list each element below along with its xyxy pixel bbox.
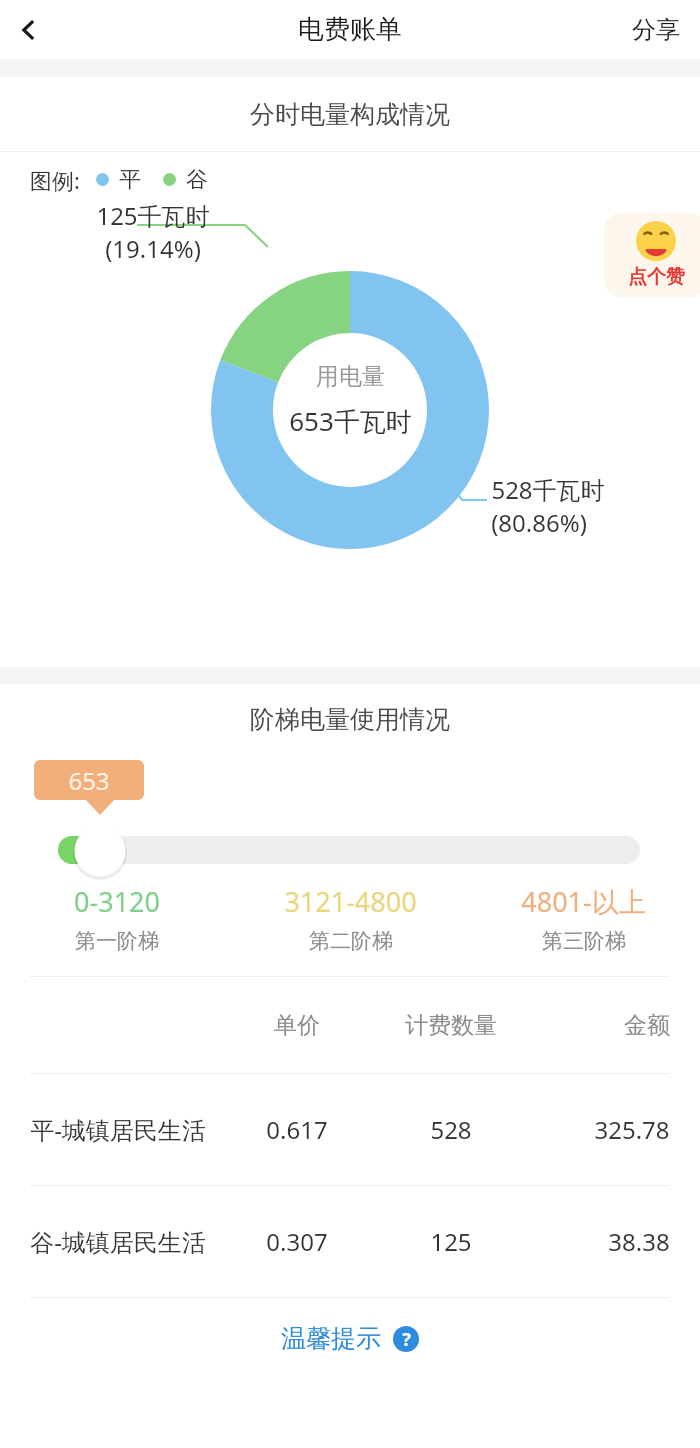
staticText: 金额	[624, 1011, 670, 1040]
staticText: 125千瓦时	[96, 199, 210, 232]
staticText: 用电量	[316, 362, 385, 391]
staticText: 125	[430, 1225, 472, 1258]
staticText: 图例:	[30, 165, 80, 195]
staticText: 0.307	[266, 1225, 328, 1258]
staticText: 阶梯电量使用情况	[250, 704, 450, 735]
button[interactable]: 0-3120	[0, 879, 234, 958]
button[interactable]: 平-城镇居民生活	[30, 1074, 670, 1185]
button[interactable]: 分享	[612, 0, 700, 59]
staticText: 电费账单	[298, 13, 402, 46]
staticText: (80.86%)	[491, 506, 587, 539]
staticText: 计费数量	[405, 1011, 497, 1040]
staticText: 0-3120	[74, 883, 160, 920]
button[interactable]: 谷-城镇居民生活	[30, 1186, 670, 1297]
staticText: 分享	[632, 15, 680, 45]
staticText: 4801-以上	[521, 883, 646, 920]
staticText: 38.38	[608, 1225, 670, 1258]
staticText: 528千瓦时	[491, 473, 605, 506]
staticText: ?	[402, 1327, 411, 1352]
staticText: 528	[430, 1113, 472, 1146]
button[interactable]: 温馨提示	[267, 1315, 433, 1362]
staticText: 第一阶梯	[75, 928, 159, 954]
button[interactable]: 单价	[30, 977, 670, 1073]
staticText: 点个赞	[628, 265, 685, 289]
staticText: 温馨提示	[281, 1323, 381, 1354]
staticText: 0.617	[266, 1113, 328, 1146]
button[interactable]: 点个赞	[604, 213, 700, 297]
staticText: 3121-4800	[284, 883, 417, 920]
staticText: 第三阶梯	[542, 928, 626, 954]
button[interactable]: 用电量阶梯	[58, 836, 640, 864]
button[interactable]: Back	[0, 0, 58, 59]
staticText: 平	[119, 166, 141, 194]
button[interactable]: 4801-以上	[467, 879, 700, 958]
staticText: 653	[68, 764, 110, 797]
staticText: 谷-城镇居民生活	[30, 1225, 206, 1258]
staticText: 谷	[186, 166, 208, 194]
staticText: 325.78	[594, 1113, 670, 1146]
staticText: 653千瓦时	[289, 403, 412, 439]
staticText: 单价	[274, 1011, 320, 1040]
button[interactable]: 3121-4800	[234, 879, 467, 958]
staticText: (19.14%)	[105, 232, 201, 265]
staticText: 分时电量构成情况	[250, 99, 450, 130]
staticText: 平-城镇居民生活	[30, 1113, 206, 1146]
staticText: 第二阶梯	[309, 928, 393, 954]
